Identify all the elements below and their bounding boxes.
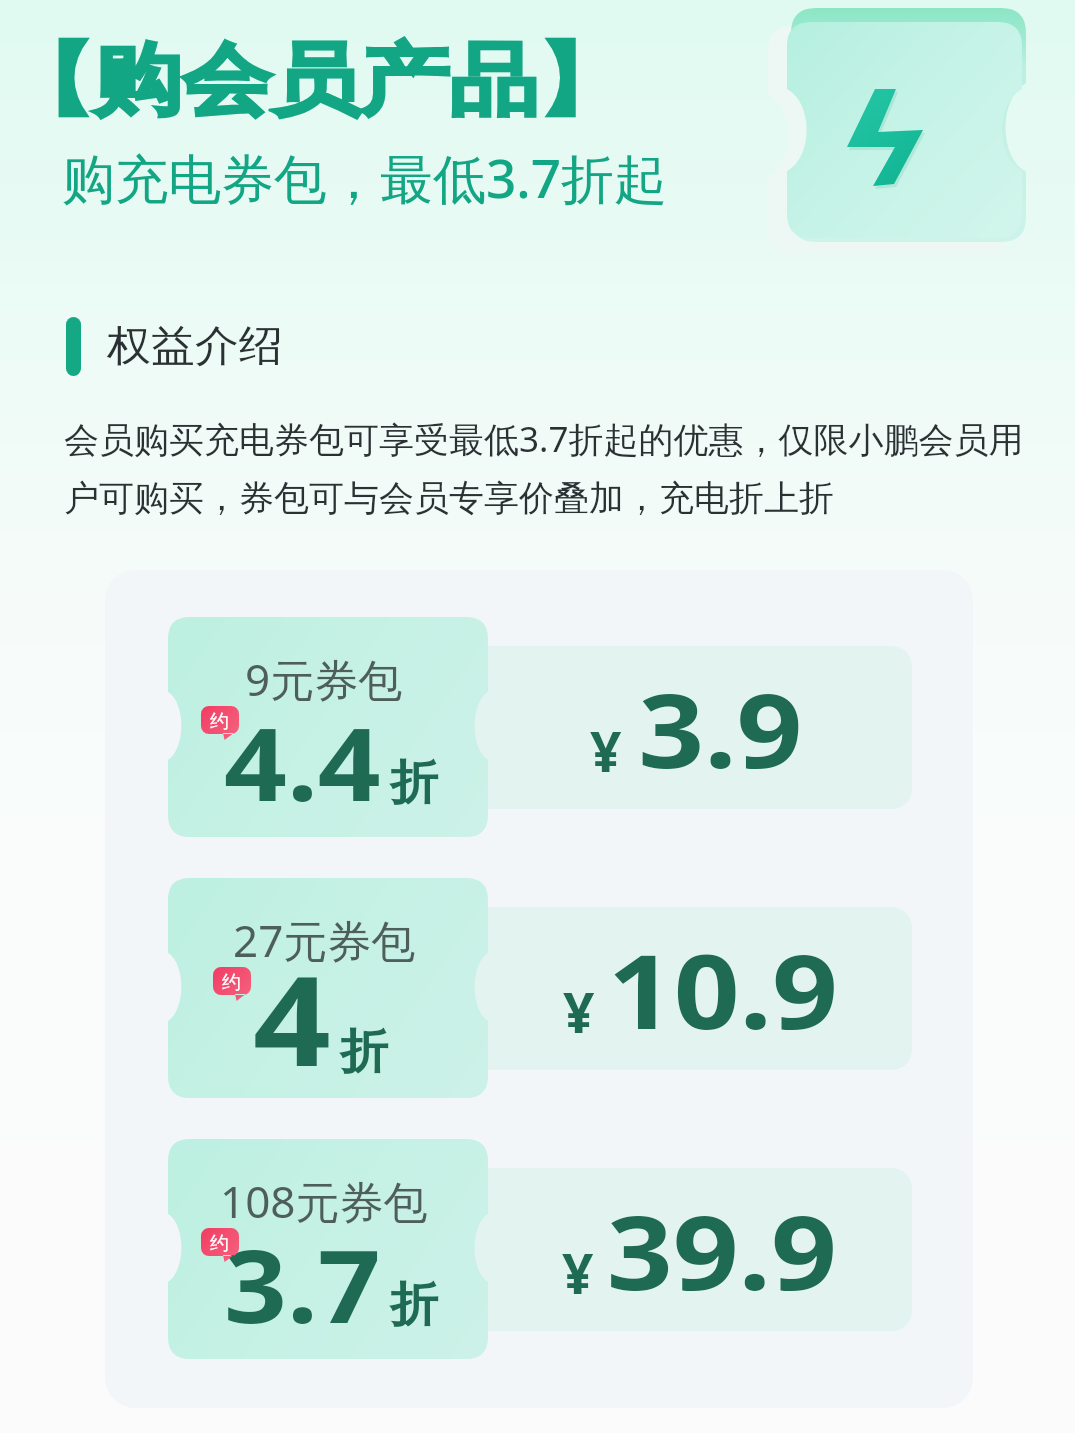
staticText: 折 bbox=[340, 1022, 388, 1082]
staticText: 折 bbox=[390, 753, 438, 813]
button[interactable] bbox=[168, 617, 488, 837]
staticText: 4 bbox=[253, 934, 331, 1098]
button[interactable]: ¥ bbox=[462, 907, 912, 1070]
button[interactable] bbox=[168, 1139, 488, 1359]
staticText: 108元券包 bbox=[220, 1171, 428, 1229]
staticText: 4.4 bbox=[224, 694, 381, 830]
staticText: 折 bbox=[390, 1275, 438, 1335]
staticText: 3.7 bbox=[224, 1216, 381, 1352]
staticText: 约 bbox=[210, 710, 229, 734]
staticText: 39.9 bbox=[607, 1180, 837, 1320]
button[interactable]: 权益介绍 bbox=[66, 315, 307, 378]
staticText: 权益介绍 bbox=[107, 320, 283, 373]
button[interactable]: ¥ bbox=[462, 646, 912, 809]
staticText: 约 bbox=[210, 1232, 229, 1256]
staticText: 10.9 bbox=[608, 919, 838, 1059]
staticText: 购充电券包，最低3.7折起 bbox=[62, 141, 668, 213]
button[interactable]: ¥ bbox=[462, 1168, 912, 1331]
other: 充电券包 bbox=[750, 0, 1075, 270]
staticText: ¥ bbox=[562, 1235, 594, 1310]
staticText: 【购会员产品】 bbox=[4, 32, 627, 131]
staticText: 约 bbox=[222, 971, 241, 995]
staticText: 会员购买充电券包可享受最低3.7折起的优惠，仅限小鹏会员用 户可购买，券包可与会… bbox=[64, 415, 1024, 520]
staticText: ¥ bbox=[563, 974, 595, 1049]
button[interactable] bbox=[168, 878, 488, 1098]
staticText: 27元券包 bbox=[233, 910, 416, 968]
staticText: ¥ bbox=[590, 713, 622, 788]
staticText: 3.9 bbox=[638, 658, 803, 798]
staticText: 9元券包 bbox=[245, 649, 403, 707]
